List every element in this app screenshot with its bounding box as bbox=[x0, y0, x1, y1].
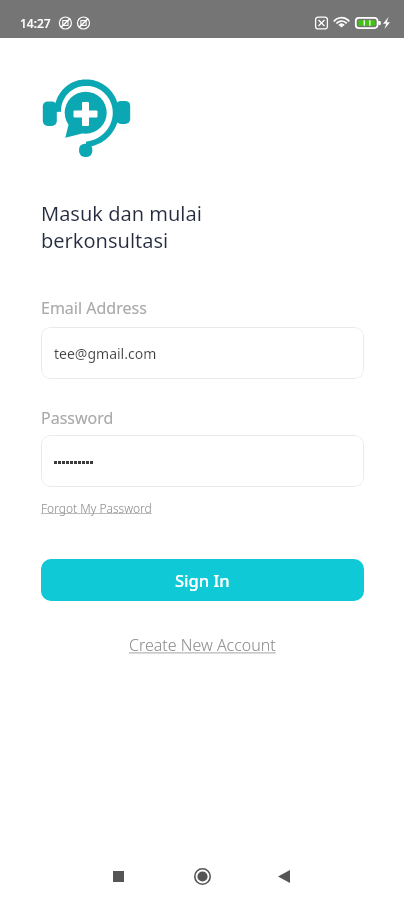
button[interactable]: Create New Account bbox=[129, 634, 276, 656]
staticText: Email Address bbox=[41, 297, 147, 319]
staticText: 14:27 bbox=[20, 15, 51, 31]
button[interactable]: tee@gmail.com bbox=[41, 327, 364, 379]
button[interactable]: Back bbox=[260, 852, 308, 900]
button[interactable]: Recent apps bbox=[94, 852, 142, 900]
staticText: Masuk dan mulai berkonsultasi bbox=[41, 200, 202, 254]
staticText: Sign In bbox=[175, 569, 230, 591]
staticText: tee@gmail.com bbox=[54, 344, 157, 363]
button[interactable]: Home bbox=[178, 852, 226, 900]
staticText: Password bbox=[41, 407, 114, 429]
button[interactable] bbox=[41, 435, 364, 487]
button[interactable]: Sign In bbox=[41, 559, 364, 601]
button[interactable]: Forgot My Password bbox=[41, 500, 152, 516]
